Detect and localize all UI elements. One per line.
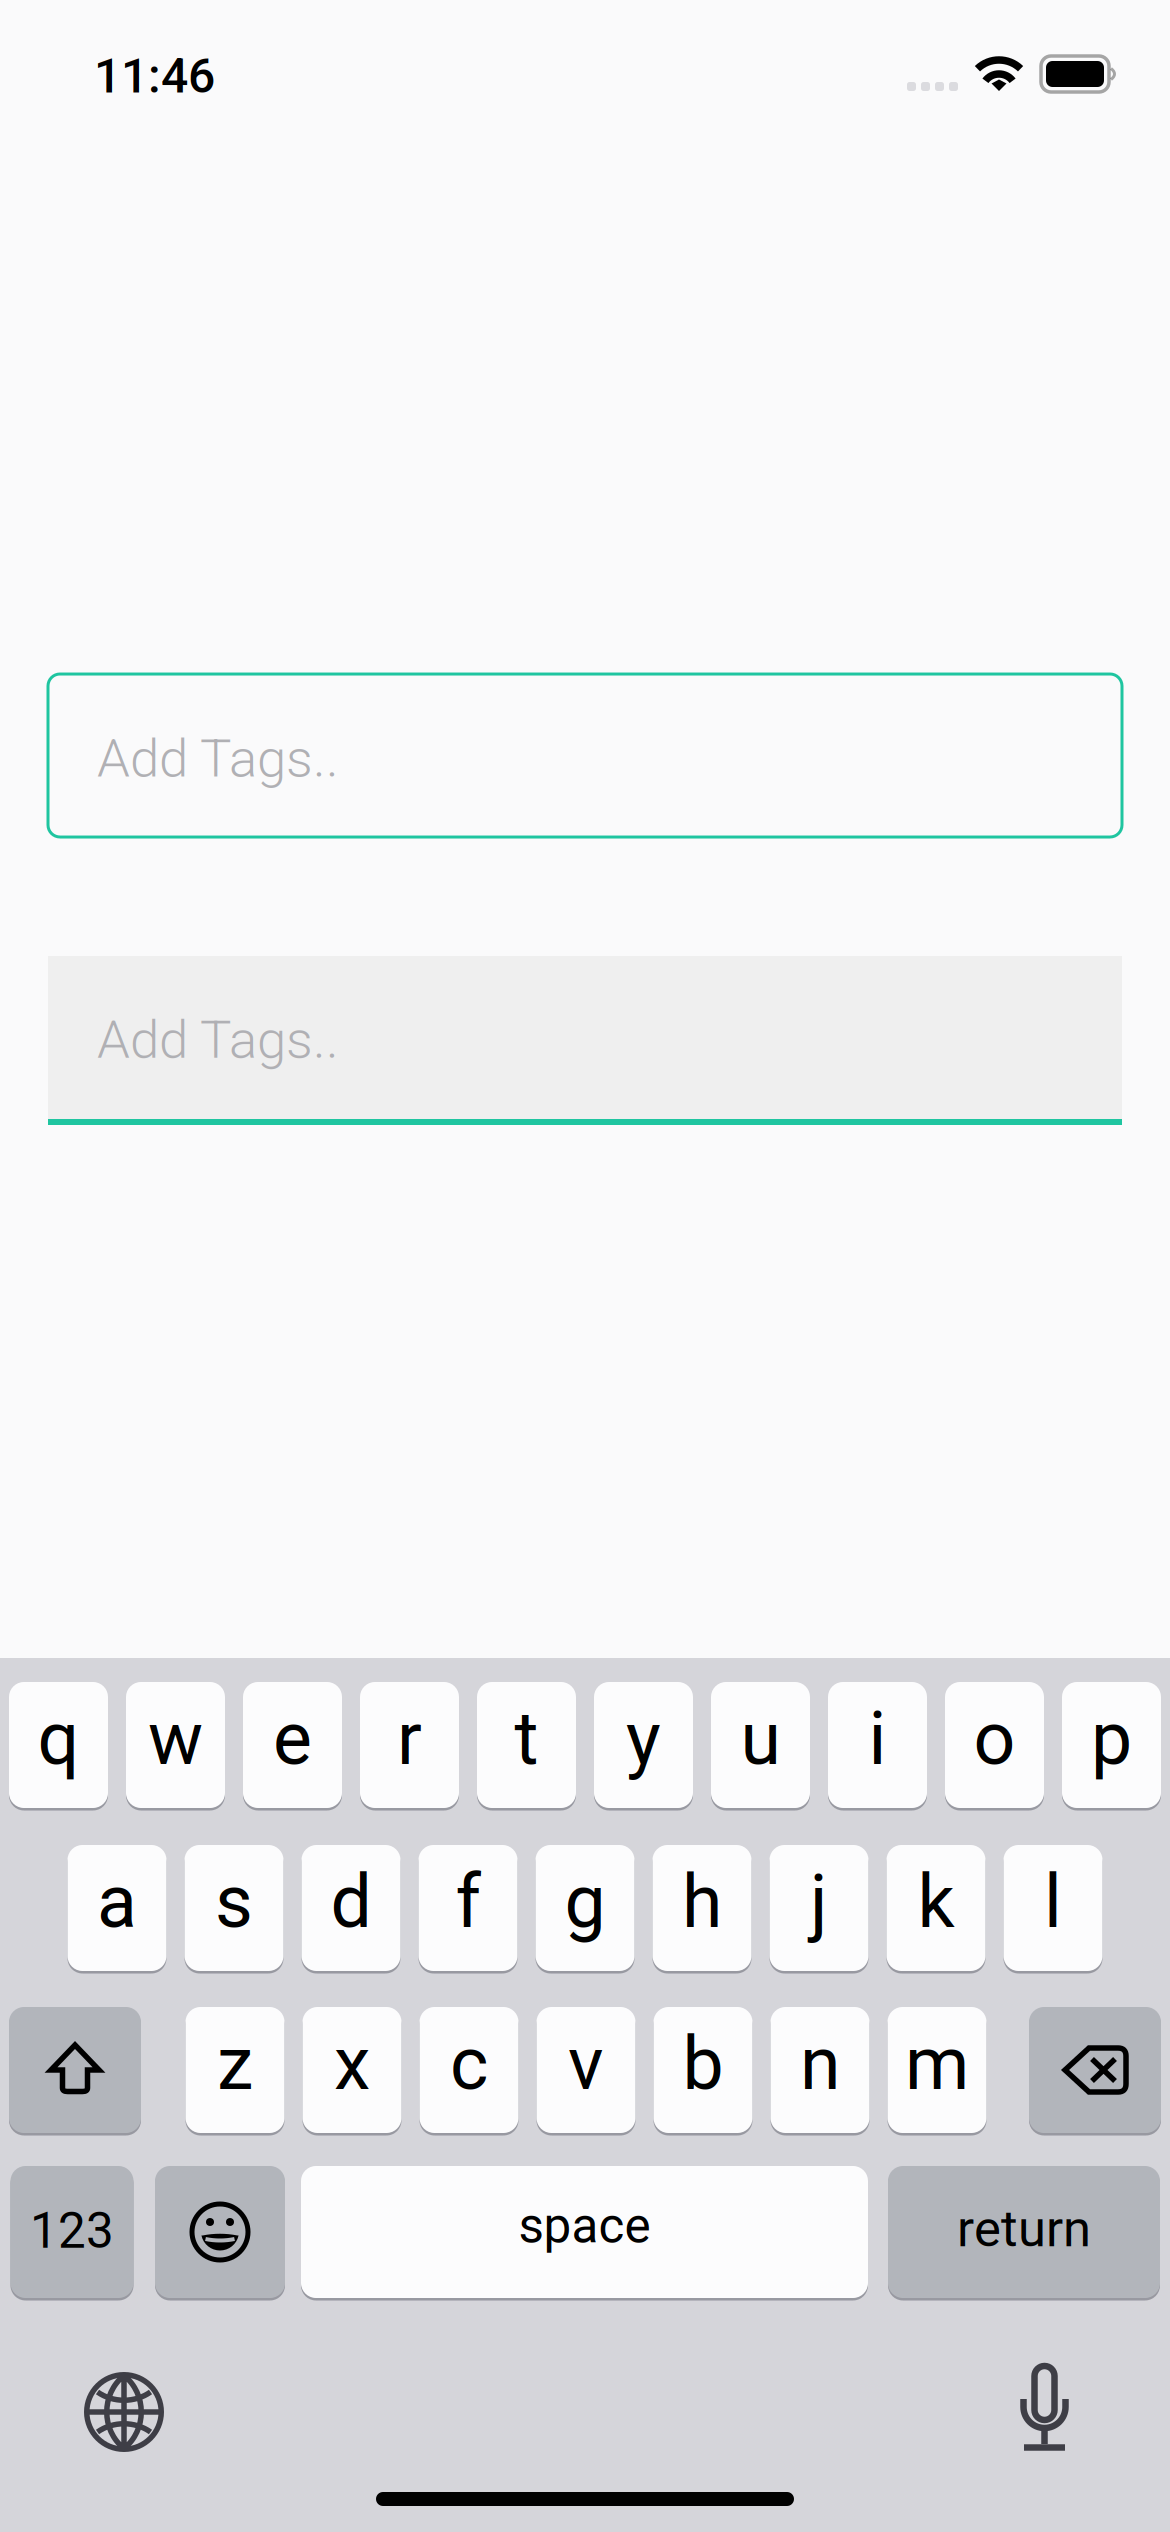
staticText: 11:46 <box>94 48 215 104</box>
staticText: a <box>97 1859 137 1945</box>
staticText: u <box>740 1696 780 1782</box>
staticText: p <box>1091 1696 1132 1782</box>
button[interactable]: a <box>67 1845 166 1971</box>
button[interactable]: i <box>828 1682 927 1808</box>
staticText: g <box>564 1859 605 1945</box>
button[interactable]: Add Tags.. <box>48 674 1122 837</box>
button[interactable]: return <box>888 2166 1160 2298</box>
staticText: q <box>37 1696 79 1782</box>
button[interactable]: g <box>535 1845 634 1971</box>
staticText: i <box>868 1696 886 1782</box>
staticText: n <box>800 2021 840 2107</box>
staticText: k <box>917 1859 954 1945</box>
staticText: e <box>273 1696 312 1782</box>
staticText: return <box>957 2199 1091 2259</box>
button[interactable]: x <box>302 2007 401 2133</box>
button[interactable]: Delete <box>1029 2007 1161 2133</box>
staticText: d <box>330 1859 371 1945</box>
staticText: v <box>568 2021 604 2107</box>
button[interactable]: l <box>1003 1845 1102 1971</box>
button[interactable]: f <box>418 1845 517 1971</box>
button[interactable]: Emoji <box>155 2166 285 2298</box>
staticText: Add Tags.. <box>97 1009 339 1071</box>
button[interactable]: t <box>477 1682 576 1808</box>
button[interactable]: w <box>126 1682 225 1808</box>
staticText: r <box>397 1696 422 1782</box>
button[interactable]: Dictation <box>1017 2366 1072 2451</box>
button[interactable]: q <box>9 1682 108 1808</box>
staticText: h <box>682 1859 722 1945</box>
staticText: f <box>455 1859 480 1945</box>
button[interactable]: y <box>594 1682 693 1808</box>
button[interactable]: c <box>419 2007 518 2133</box>
button[interactable]: Next keyboard <box>84 2372 164 2452</box>
staticText: o <box>973 1696 1015 1782</box>
staticText: j <box>810 1859 828 1945</box>
button[interactable]: u <box>711 1682 810 1808</box>
button[interactable]: e <box>243 1682 342 1808</box>
staticText: x <box>334 2021 370 2107</box>
staticText: y <box>626 1696 661 1782</box>
button[interactable]: k <box>886 1845 985 1971</box>
button[interactable]: 123 <box>10 2166 133 2298</box>
staticText: s <box>215 1859 253 1945</box>
button[interactable]: p <box>1062 1682 1161 1808</box>
button[interactable]: space <box>301 2166 868 2298</box>
button[interactable]: m <box>887 2007 986 2133</box>
staticText: space <box>518 2197 650 2255</box>
button[interactable]: h <box>652 1845 751 1971</box>
staticText: l <box>1044 1859 1062 1945</box>
button[interactable]: Shift <box>9 2007 141 2133</box>
staticText: b <box>682 2021 723 2107</box>
button[interactable]: z <box>185 2007 284 2133</box>
button[interactable]: o <box>945 1682 1044 1808</box>
button[interactable]: j <box>769 1845 868 1971</box>
staticText: c <box>450 2021 488 2107</box>
staticText: m <box>905 2021 969 2107</box>
button[interactable]: Add Tags.. <box>48 956 1122 1125</box>
button[interactable]: d <box>301 1845 400 1971</box>
staticText: w <box>148 1696 203 1782</box>
button[interactable]: r <box>360 1682 459 1808</box>
button[interactable]: v <box>536 2007 635 2133</box>
button[interactable]: s <box>184 1845 283 1971</box>
staticText: z <box>217 2021 253 2107</box>
staticText: t <box>514 1696 538 1782</box>
button[interactable]: n <box>770 2007 869 2133</box>
button[interactable]: b <box>653 2007 752 2133</box>
staticText: Add Tags.. <box>97 728 339 789</box>
staticText: 123 <box>30 2202 114 2260</box>
